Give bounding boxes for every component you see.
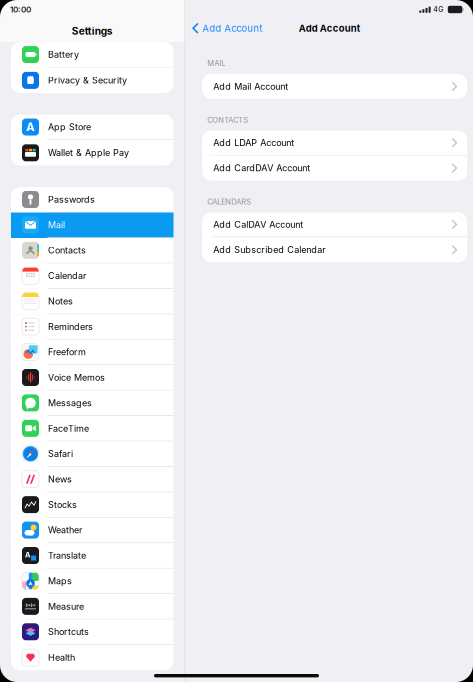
button[interactable]: Health [11, 645, 173, 670]
button[interactable]: Maps [11, 569, 173, 594]
button[interactable]: Add Mail Account [202, 74, 467, 99]
staticText: Passwords [48, 194, 95, 205]
staticText: Add Subscribed Calendar [213, 244, 325, 255]
staticText: Mail [48, 219, 65, 230]
staticText: 4G [433, 5, 443, 14]
button[interactable]: FaceTime [11, 416, 173, 441]
button[interactable]: Add CalDAV Account [202, 212, 467, 237]
button[interactable]: Reminders [11, 314, 173, 340]
button[interactable]: Privacy & Security [11, 68, 173, 93]
staticText: Calendar [48, 270, 86, 281]
staticText: Privacy & Security [48, 75, 127, 86]
staticText: Contacts [48, 245, 86, 256]
button[interactable]: News [11, 467, 173, 492]
staticText: Add Account [202, 22, 262, 34]
staticText: Weather [48, 525, 82, 535]
button[interactable]: Add Subscribed Calendar [202, 237, 467, 262]
button[interactable]: Weather [11, 518, 173, 543]
staticText: A [26, 120, 35, 134]
staticText: A [25, 550, 30, 559]
staticText: CALENDARS [207, 197, 251, 206]
staticText: Settings [72, 25, 113, 37]
button[interactable]: Contacts [11, 238, 173, 263]
staticText: Health [48, 652, 75, 663]
button[interactable]: Shortcuts [11, 619, 173, 645]
staticText: News [48, 474, 72, 485]
button[interactable]: A [11, 115, 173, 140]
button[interactable]: Add LDAP Account [202, 131, 467, 156]
staticText: Reminders [48, 321, 93, 332]
button[interactable]: Messages [11, 391, 173, 416]
staticText: Measure [48, 601, 84, 612]
button[interactable]: Add CardDAV Account [202, 156, 467, 181]
staticText: Add CardDAV Account [213, 163, 310, 174]
button[interactable]: Notes [11, 289, 173, 314]
staticText: Shortcuts [48, 626, 89, 637]
staticText: Maps [48, 575, 72, 586]
staticText: Messages [48, 397, 92, 408]
staticText: Battery [48, 49, 79, 60]
staticText: Stocks [48, 499, 77, 510]
staticText: Safari [48, 448, 73, 459]
button[interactable]: Safari [11, 441, 173, 467]
button[interactable]: Passwords [11, 187, 173, 212]
button[interactable]: Measure [11, 594, 173, 619]
staticText: MAIL [207, 59, 225, 68]
staticText: Notes [48, 296, 73, 307]
staticText: Freeform [48, 347, 86, 357]
staticText: Add Mail Account [213, 81, 288, 92]
button[interactable]: Calendar [11, 263, 173, 289]
button[interactable]: Mail [11, 213, 173, 238]
button[interactable]: Wallet & Apple Pay [11, 140, 173, 165]
button[interactable]: Add Account [185, 19, 267, 37]
staticText: CONTACTS [207, 116, 248, 125]
staticText: FaceTime [48, 423, 89, 434]
button[interactable]: Freeform [11, 340, 173, 365]
staticText: Add LDAP Account [213, 137, 294, 148]
staticText: Add Account [299, 22, 360, 34]
staticText: Translate [48, 550, 86, 561]
staticText: App Store [48, 122, 91, 132]
staticText: Voice Memos [48, 372, 105, 383]
button[interactable]: A [11, 543, 173, 568]
staticText: Add CalDAV Account [213, 219, 303, 230]
staticText: Wallet & Apple Pay [48, 147, 129, 158]
staticText: 10:00 [10, 5, 31, 14]
button[interactable]: Voice Memos [11, 365, 173, 390]
button[interactable]: Battery [11, 42, 173, 68]
button[interactable]: Stocks [11, 492, 173, 518]
